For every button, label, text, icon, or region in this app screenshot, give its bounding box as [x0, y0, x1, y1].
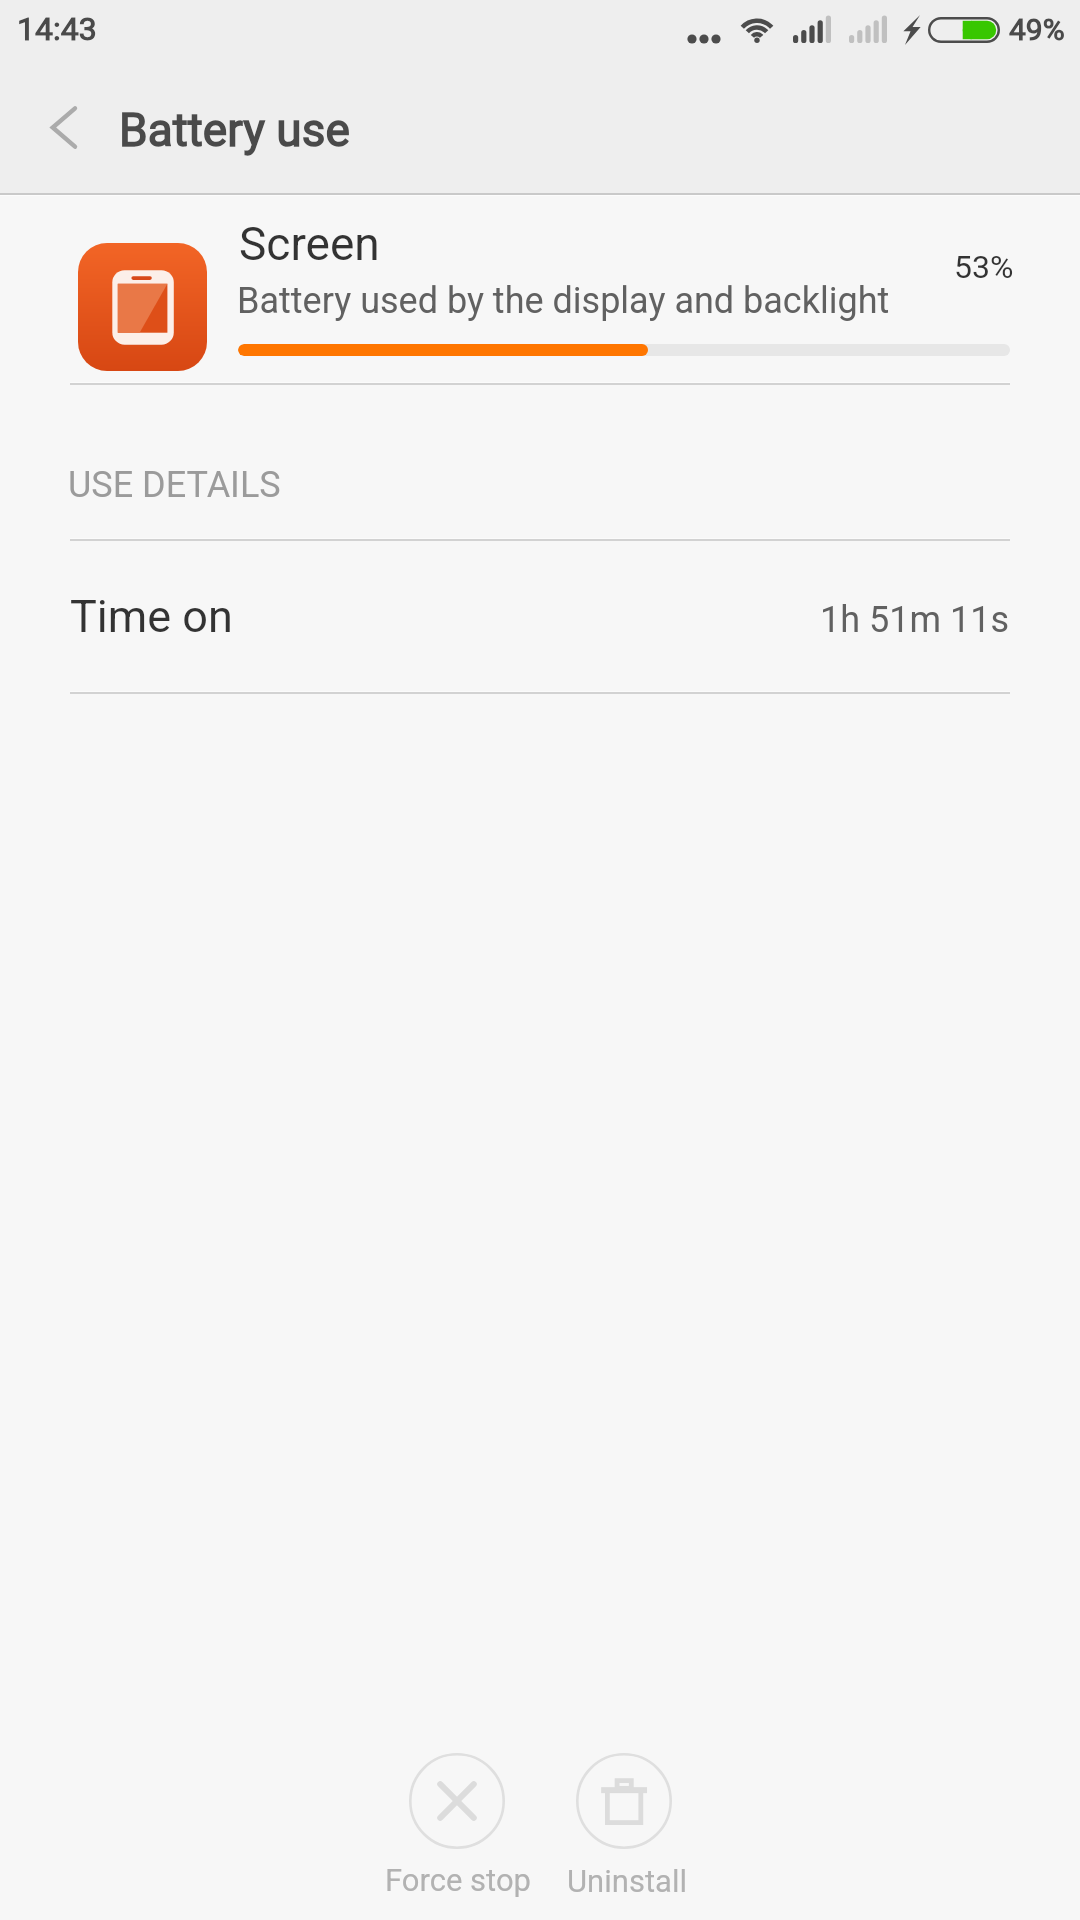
staticText: Screen — [239, 217, 380, 271]
other: Use details — [68, 464, 281, 506]
button[interactable]: Battery use — [119, 103, 350, 157]
staticText: Uninstall — [567, 1863, 687, 1899]
staticText: Force stop — [385, 1862, 531, 1898]
button[interactable]: Uninstall — [567, 1753, 717, 1903]
staticText: Battery used by the display and backligh… — [237, 280, 890, 322]
button[interactable]: Back — [0, 64, 120, 192]
staticText: 49% — [1009, 12, 1065, 47]
staticText: 1h 51m 11s — [820, 599, 1009, 641]
staticText: USE DETAILS — [68, 464, 281, 506]
staticText: Battery use — [119, 103, 350, 157]
button[interactable]: Time on — [0, 541, 1080, 692]
staticText: 53% — [954, 248, 1014, 286]
button[interactable]: Force stop — [385, 1753, 535, 1902]
staticText: Time on — [70, 590, 233, 643]
staticText: 14:43 — [17, 10, 97, 48]
button[interactable]: Screen — [0, 196, 1080, 384]
